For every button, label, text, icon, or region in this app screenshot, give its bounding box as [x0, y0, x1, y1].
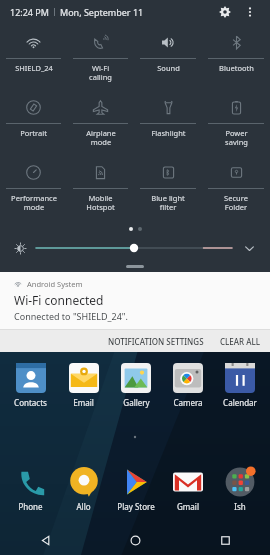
button[interactable]: Allo: [57, 464, 110, 515]
button[interactable]: Portrait: [0, 92, 67, 157]
button[interactable]: CLEAR ALL: [212, 330, 270, 352]
button[interactable]: Gallery: [110, 360, 162, 411]
staticText: Flashlight: [151, 128, 186, 138]
staticText: Phone: [18, 501, 43, 512]
button[interactable]: Secure Folder: [202, 157, 270, 222]
staticText: Gmail: [177, 501, 199, 512]
button[interactable]: Power saving: [202, 92, 270, 157]
staticText: Portrait: [20, 128, 47, 138]
button[interactable]: Android System: [0, 272, 270, 329]
staticText: Contacts: [14, 397, 47, 408]
staticText: Android System: [27, 279, 83, 289]
button[interactable]: Expand brightness settings: [240, 239, 258, 257]
staticText: CLEAR ALL: [220, 336, 260, 347]
button[interactable]: Gmail: [162, 464, 214, 515]
staticText: Mon, September 11: [60, 6, 144, 18]
staticText: Wi-Fi calling: [89, 63, 112, 82]
staticText: Blue light filter: [151, 193, 185, 212]
staticText: Connected to "SHIELD_24".: [14, 310, 128, 322]
button[interactable]: Play Store: [110, 464, 162, 515]
button[interactable]: Back: [0, 525, 90, 555]
staticText: Email: [73, 397, 94, 408]
staticText: Sound: [157, 63, 180, 73]
staticText: Wi-Fi connected: [14, 292, 104, 308]
button[interactable]: Calendar: [214, 360, 266, 411]
staticText: 12:24 PM: [10, 6, 49, 18]
staticText: Airplane mode: [86, 128, 116, 147]
staticText: Play Store: [117, 501, 155, 512]
button[interactable]: Email: [57, 360, 110, 411]
button[interactable]: Blue light filter: [134, 157, 202, 222]
button[interactable]: Recent apps: [180, 525, 270, 555]
button[interactable]: NOTIFICATION SETTINGS: [100, 330, 212, 352]
staticText: Secure Folder: [224, 193, 248, 212]
button[interactable]: Sound: [134, 27, 202, 92]
staticText: SHIELD_24: [15, 63, 53, 73]
staticText: Power saving: [225, 128, 248, 147]
button[interactable]: Brightness: [12, 240, 28, 256]
staticText: NOTIFICATION SETTINGS: [108, 336, 204, 347]
button[interactable]: Contacts: [4, 360, 57, 411]
button[interactable]: [36, 239, 232, 257]
button[interactable]: Ish: [214, 464, 266, 515]
button[interactable]: Camera: [162, 360, 214, 411]
button[interactable]: Airplane mode: [67, 92, 134, 157]
button[interactable]: More options: [240, 2, 260, 22]
staticText: Calendar: [223, 397, 257, 408]
button[interactable]: Mobile Hotspot: [67, 157, 134, 222]
staticText: Gallery: [123, 397, 150, 408]
staticText: Mobile Hotspot: [86, 193, 115, 212]
button[interactable]: Bluetooth: [202, 27, 270, 92]
button[interactable]: Wi-Fi calling: [67, 27, 134, 92]
button[interactable]: Phone: [4, 464, 57, 515]
staticText: Bluetooth: [219, 63, 254, 73]
button[interactable]: Home: [90, 525, 180, 555]
staticText: Allo: [76, 501, 91, 512]
button[interactable]: Flashlight: [134, 92, 202, 157]
staticText: Camera: [173, 397, 203, 408]
button[interactable]: Performance mode: [0, 157, 67, 222]
button[interactable]: Settings: [214, 1, 236, 23]
staticText: Ish: [234, 501, 246, 512]
staticText: Performance mode: [11, 193, 57, 212]
button[interactable]: SHIELD_24: [0, 27, 67, 92]
